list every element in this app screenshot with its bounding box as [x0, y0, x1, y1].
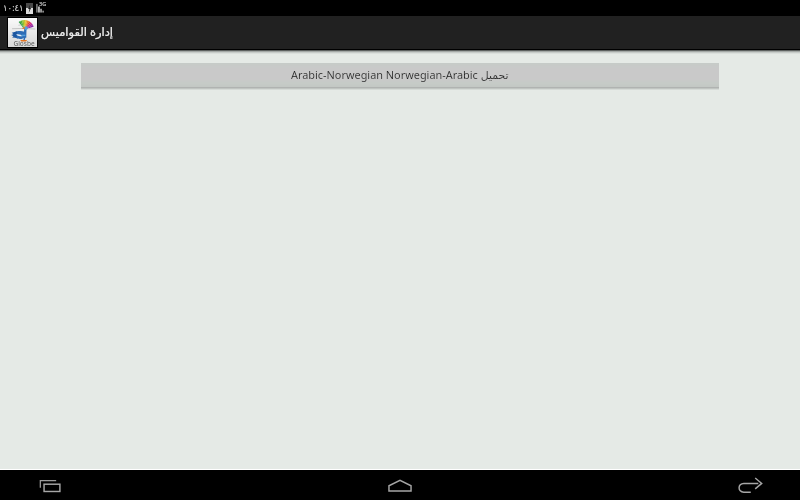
button[interactable]: Back: [724, 470, 776, 500]
button[interactable]: Home: [374, 470, 426, 500]
staticText: إدارة القواميس: [41, 24, 114, 40]
staticText: ١٠:٤١: [3, 2, 24, 14]
button[interactable]: Arabic-Norwegian Norwegian-Arabic تحميل: [81, 63, 719, 87]
staticText: 3G: [39, 0, 47, 7]
button[interactable]: Recent apps: [24, 470, 75, 500]
staticText: Arabic-Norwegian Norwegian-Arabic تحميل: [291, 67, 509, 82]
staticText: Glosbe: [13, 39, 35, 48]
